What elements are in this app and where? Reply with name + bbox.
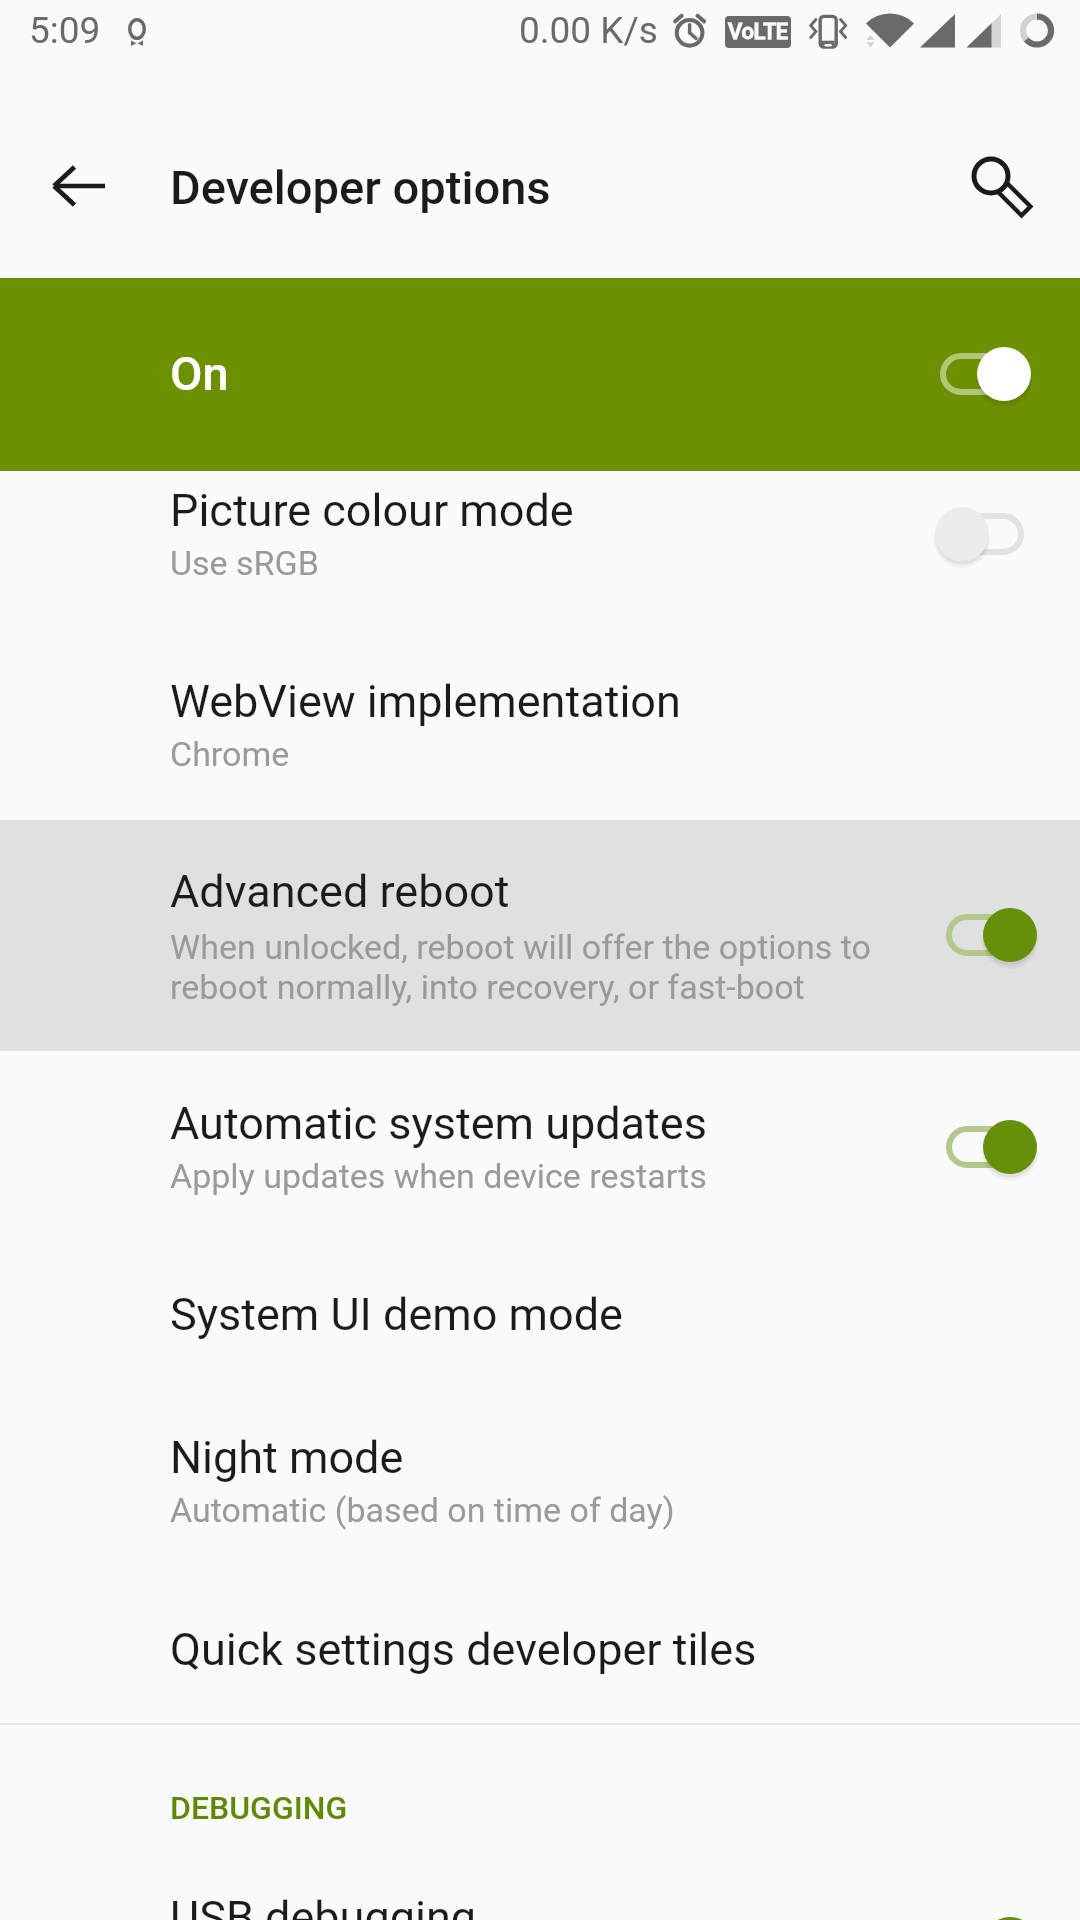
staticText: Automatic (based on time of day) [170,1490,675,1530]
button[interactable]: Automatic system updates [0,1052,1080,1242]
button[interactable]: Advanced reboot [0,820,1080,1051]
staticText: USB debugging [170,1891,477,1920]
staticText: 0.00 K/s [519,9,658,52]
staticText: 5:09 [29,9,101,52]
staticText: Automatic system updates [170,1097,707,1150]
staticText: Use sRGB [170,543,319,583]
button[interactable]: On [0,278,1080,471]
staticText: Developer options [170,160,551,215]
button[interactable]: Picture colour mode [0,439,1080,629]
staticText: DEBUGGING [170,1789,348,1827]
staticText: System UI demo mode [170,1288,623,1341]
staticText: Advanced reboot [170,865,510,918]
staticText: VoLTE [728,19,788,45]
button[interactable]: USB debugging [0,1846,1080,1920]
staticText: Chrome [170,734,290,774]
staticText: On [170,346,229,401]
staticText: Quick settings developer tiles [170,1623,757,1676]
staticText: WebView implementation [170,675,681,728]
staticText: Picture colour mode [170,484,574,537]
button[interactable]: Quick settings developer tiles [0,1578,1080,1724]
staticText: Apply updates when device restarts [170,1156,707,1196]
button[interactable]: WebView implementation [0,630,1080,820]
staticText: When unlocked, reboot will offer the opt… [170,927,871,1007]
staticText: Night mode [170,1431,404,1484]
button[interactable]: Search [935,130,1047,242]
button[interactable]: Back [2,130,114,242]
button[interactable]: System UI demo mode [0,1243,1080,1389]
button[interactable]: Night mode [0,1386,1080,1576]
